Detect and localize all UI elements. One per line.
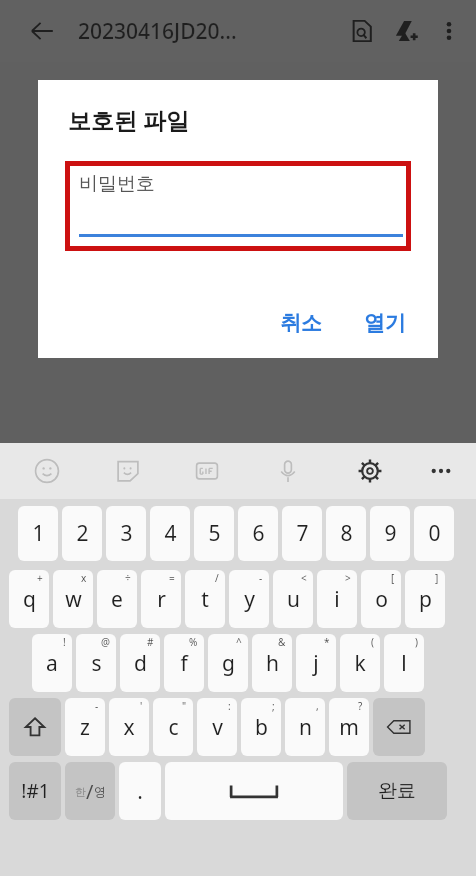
button[interactable]: g bbox=[208, 634, 248, 692]
button[interactable]: n bbox=[285, 698, 325, 756]
staticText: * bbox=[324, 635, 330, 649]
button[interactable]: f bbox=[164, 634, 204, 692]
staticText: 1 bbox=[32, 519, 45, 548]
button[interactable]: w bbox=[53, 570, 93, 628]
button[interactable]: x bbox=[109, 698, 149, 756]
staticText: 4 bbox=[164, 519, 177, 548]
staticText: / bbox=[86, 778, 94, 805]
button[interactable]: 6 bbox=[238, 506, 278, 561]
button[interactable]: Stickers bbox=[106, 449, 150, 493]
staticText: b bbox=[255, 713, 268, 742]
button[interactable]: 비밀번호 bbox=[70, 166, 406, 246]
staticText: # bbox=[147, 635, 154, 649]
button[interactable]: Shift bbox=[9, 698, 61, 756]
button[interactable]: Voice input bbox=[266, 449, 310, 493]
staticText: ^ bbox=[236, 635, 242, 649]
button[interactable]: More bbox=[419, 449, 463, 493]
button[interactable]: l bbox=[384, 634, 424, 692]
button[interactable]: d bbox=[120, 634, 160, 692]
staticText: < bbox=[301, 571, 307, 585]
button[interactable]: y bbox=[229, 570, 269, 628]
button[interactable]: 8 bbox=[326, 506, 366, 561]
button[interactable]: o bbox=[361, 570, 401, 628]
staticText: 취소 bbox=[280, 310, 322, 336]
button[interactable]: i bbox=[317, 570, 357, 628]
staticText: : bbox=[228, 699, 231, 713]
staticText: q bbox=[23, 585, 36, 614]
staticText: m bbox=[339, 713, 359, 742]
button[interactable]: 3 bbox=[106, 506, 146, 561]
button[interactable]: Back bbox=[20, 9, 64, 53]
staticText: " bbox=[182, 699, 187, 713]
button[interactable]: 4 bbox=[150, 506, 190, 561]
button[interactable]: Space bbox=[165, 762, 343, 820]
button[interactable]: p bbox=[405, 570, 445, 628]
button[interactable]: Backspace bbox=[373, 698, 425, 756]
staticText: v bbox=[212, 713, 223, 742]
button[interactable]: 0 bbox=[414, 506, 454, 561]
button[interactable]: 완료 bbox=[347, 762, 447, 820]
button[interactable]: h bbox=[252, 634, 292, 692]
button[interactable]: e bbox=[97, 570, 137, 628]
staticText: r bbox=[157, 585, 166, 614]
button[interactable]: Find in document bbox=[340, 9, 384, 53]
button[interactable]: Add to Drive bbox=[384, 9, 428, 53]
staticText: ] bbox=[435, 571, 439, 585]
staticText: k bbox=[354, 649, 366, 678]
button[interactable]: s bbox=[76, 634, 116, 692]
staticText: w bbox=[65, 585, 82, 614]
staticText: x bbox=[81, 571, 87, 585]
staticText: [ bbox=[391, 571, 395, 585]
button[interactable]: 9 bbox=[370, 506, 410, 561]
button[interactable]: Settings bbox=[348, 449, 392, 493]
button[interactable]: r bbox=[141, 570, 181, 628]
staticText: & bbox=[278, 635, 286, 649]
staticText: ( bbox=[371, 635, 374, 649]
staticText: j bbox=[313, 649, 319, 678]
staticText: 보호된 파일 bbox=[68, 104, 189, 135]
button[interactable]: q bbox=[9, 570, 49, 628]
staticText: ) bbox=[415, 635, 418, 649]
button[interactable]: m bbox=[329, 698, 369, 756]
button[interactable]: k bbox=[340, 634, 380, 692]
button[interactable]: a bbox=[32, 634, 72, 692]
button[interactable]: v bbox=[197, 698, 237, 756]
staticText: 0 bbox=[428, 519, 441, 548]
button[interactable]: z bbox=[65, 698, 105, 756]
staticText: a bbox=[46, 649, 58, 678]
staticText: y bbox=[244, 585, 255, 614]
button[interactable]: 취소 bbox=[270, 304, 332, 342]
button[interactable]: b bbox=[241, 698, 281, 756]
staticText: @ bbox=[101, 635, 110, 649]
button[interactable]: 1 bbox=[18, 506, 58, 561]
button[interactable]: u bbox=[273, 570, 313, 628]
staticText: c bbox=[168, 713, 179, 742]
button[interactable]: Emoji bbox=[25, 449, 69, 493]
button[interactable]: GIF bbox=[185, 449, 229, 493]
button[interactable]: c bbox=[153, 698, 193, 756]
button[interactable]: More options bbox=[428, 10, 470, 52]
staticText: 영 bbox=[94, 784, 106, 799]
staticText: d bbox=[134, 649, 147, 678]
staticText: !#1 bbox=[21, 778, 50, 804]
button[interactable]: 열기 bbox=[354, 304, 416, 342]
button[interactable]: t bbox=[185, 570, 225, 628]
staticText: 비밀번호 bbox=[79, 172, 155, 196]
button[interactable]: !#1 bbox=[9, 762, 61, 820]
button[interactable]: 5 bbox=[194, 506, 234, 561]
staticText: ! bbox=[63, 635, 66, 649]
staticText: l bbox=[401, 649, 407, 678]
staticText: t bbox=[201, 585, 209, 614]
button[interactable]: j bbox=[296, 634, 336, 692]
button[interactable]: 7 bbox=[282, 506, 322, 561]
staticText: 완료 bbox=[378, 779, 416, 803]
staticText: 2 bbox=[76, 519, 89, 548]
staticText: = bbox=[169, 571, 175, 585]
staticText: ; bbox=[272, 699, 275, 713]
button[interactable]: 2 bbox=[62, 506, 102, 561]
button[interactable]: Korean English toggle bbox=[65, 762, 115, 820]
staticText: 열기 bbox=[364, 310, 406, 336]
staticText: h bbox=[266, 649, 279, 678]
staticText: 7 bbox=[296, 519, 309, 548]
button[interactable]: . bbox=[119, 762, 161, 820]
